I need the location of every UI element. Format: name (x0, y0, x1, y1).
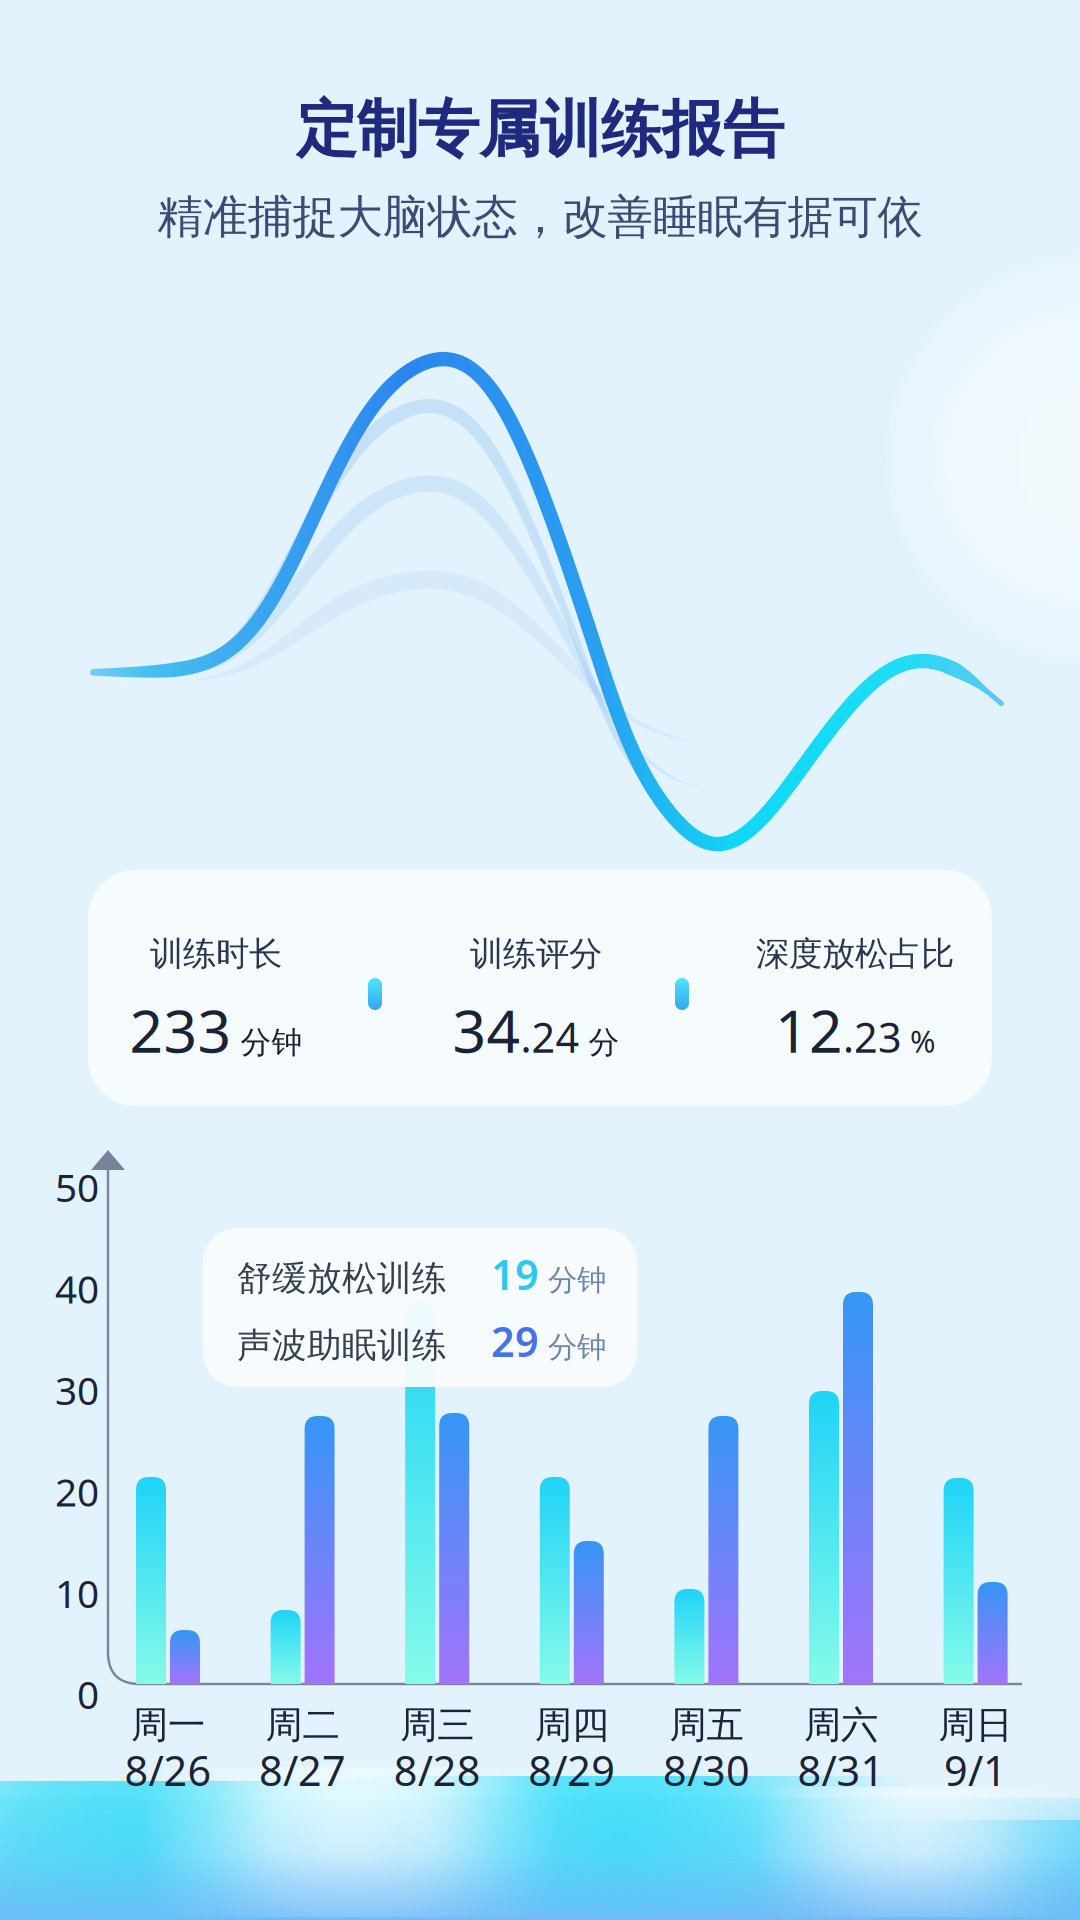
staticText: 分 (579, 1024, 619, 1061)
staticText: 周日 (939, 1702, 1013, 1748)
staticText: % (902, 1020, 935, 1061)
staticText: 精准捕捉大脑状态，改善睡眠有据可依 (157, 189, 922, 245)
staticText: 8/27 (259, 1743, 346, 1797)
staticText: 8/26 (124, 1743, 211, 1797)
staticText: 50 (55, 1161, 99, 1213)
staticText: 9/1 (944, 1743, 1007, 1797)
staticText: 声波助眠训练 (237, 1324, 447, 1367)
staticText: 40 (55, 1263, 99, 1314)
staticText: 分钟 (539, 1262, 606, 1298)
staticText: 30 (55, 1364, 99, 1416)
staticText: 分钟 (539, 1329, 606, 1365)
staticText: 舒缓放松训练 (237, 1257, 447, 1300)
staticText: 深度放松占比 (756, 933, 954, 974)
staticText: 周四 (535, 1702, 609, 1748)
staticText: 周一 (131, 1702, 205, 1748)
staticText: 10 (55, 1567, 99, 1619)
staticText: 233 (129, 991, 231, 1069)
staticText: 8/28 (394, 1743, 481, 1797)
staticText: 训练时长 (150, 933, 282, 974)
staticText: 定制专属训练报告 (296, 92, 784, 167)
staticText: 周三 (400, 1702, 474, 1748)
staticText: 周二 (266, 1702, 340, 1748)
staticText: 20 (55, 1466, 99, 1517)
staticText: 8/31 (797, 1743, 884, 1797)
staticText: 周六 (804, 1702, 878, 1748)
staticText: .23 (843, 1009, 902, 1064)
staticText: 12 (775, 991, 843, 1069)
staticText: 19 (491, 1247, 539, 1301)
staticText: 训练评分 (470, 933, 602, 974)
staticText: 周五 (669, 1702, 743, 1748)
staticText: 8/29 (528, 1743, 615, 1797)
staticText: 34 (452, 991, 520, 1069)
staticText: 8/30 (663, 1743, 750, 1797)
staticText: 29 (491, 1313, 539, 1368)
staticText: 分钟 (231, 1024, 302, 1061)
staticText: 0 (77, 1668, 99, 1720)
staticText: .24 (520, 1009, 579, 1064)
